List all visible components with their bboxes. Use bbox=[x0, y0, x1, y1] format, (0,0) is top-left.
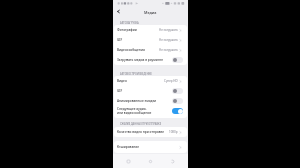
staticText: Не загружать bbox=[159, 28, 178, 32]
staticText: GIF bbox=[117, 89, 123, 93]
staticText: Анимированные эмодзи bbox=[117, 99, 157, 103]
staticText: Следующее аудио- bbox=[117, 107, 147, 111]
button[interactable]: Фотографии bbox=[114, 25, 187, 35]
staticText: Не загружать bbox=[159, 38, 178, 42]
button[interactable]: Загружать медиа в роуминге bbox=[114, 55, 187, 65]
staticText: Супер HD bbox=[164, 79, 178, 83]
staticText: СЖАТИЕ ДАННЫХ ПРИ ОТПРАВКЕ bbox=[120, 122, 162, 125]
button[interactable]: Следующее аудио- bbox=[114, 106, 187, 118]
button[interactable]: Toggle bbox=[172, 108, 183, 114]
staticText: или видеосообщение bbox=[117, 111, 152, 115]
button[interactable]: GIF bbox=[114, 86, 187, 96]
staticText: Кэширование bbox=[117, 145, 140, 149]
staticText: 1080p bbox=[169, 130, 178, 134]
staticText: Загружать медиа в роуминге bbox=[117, 58, 164, 62]
staticText: Видео bbox=[117, 79, 127, 83]
button[interactable]: Анимированные эмодзи bbox=[114, 96, 187, 106]
button[interactable]: Качество видео при отправке bbox=[114, 127, 187, 137]
staticText: Не загружать bbox=[159, 48, 178, 52]
staticText: АВТОЗАГРУЗКА bbox=[120, 21, 139, 24]
button[interactable]: Toggle bbox=[172, 98, 183, 104]
button[interactable]: Back bbox=[115, 8, 122, 15]
button[interactable]: Кэширование bbox=[114, 141, 187, 153]
button[interactable]: Видео bbox=[114, 76, 187, 86]
staticText: Видеосообщения bbox=[117, 48, 145, 52]
staticText: АВТОВОСПРОИЗВЕДЕНИЕ bbox=[120, 72, 152, 75]
button[interactable]: Home bbox=[144, 155, 157, 168]
staticText: Фотографии bbox=[117, 28, 137, 32]
button[interactable]: Back bbox=[166, 155, 179, 168]
button[interactable]: Toggle bbox=[172, 88, 183, 94]
button[interactable]: Toggle bbox=[172, 57, 183, 63]
staticText: Качество видео при отправке bbox=[117, 130, 165, 134]
button[interactable]: Recents bbox=[122, 155, 135, 168]
staticText: Медиа bbox=[144, 10, 157, 15]
button[interactable]: Видеосообщения bbox=[114, 45, 187, 55]
staticText: GIF bbox=[117, 38, 123, 42]
button[interactable]: GIF bbox=[114, 35, 187, 45]
